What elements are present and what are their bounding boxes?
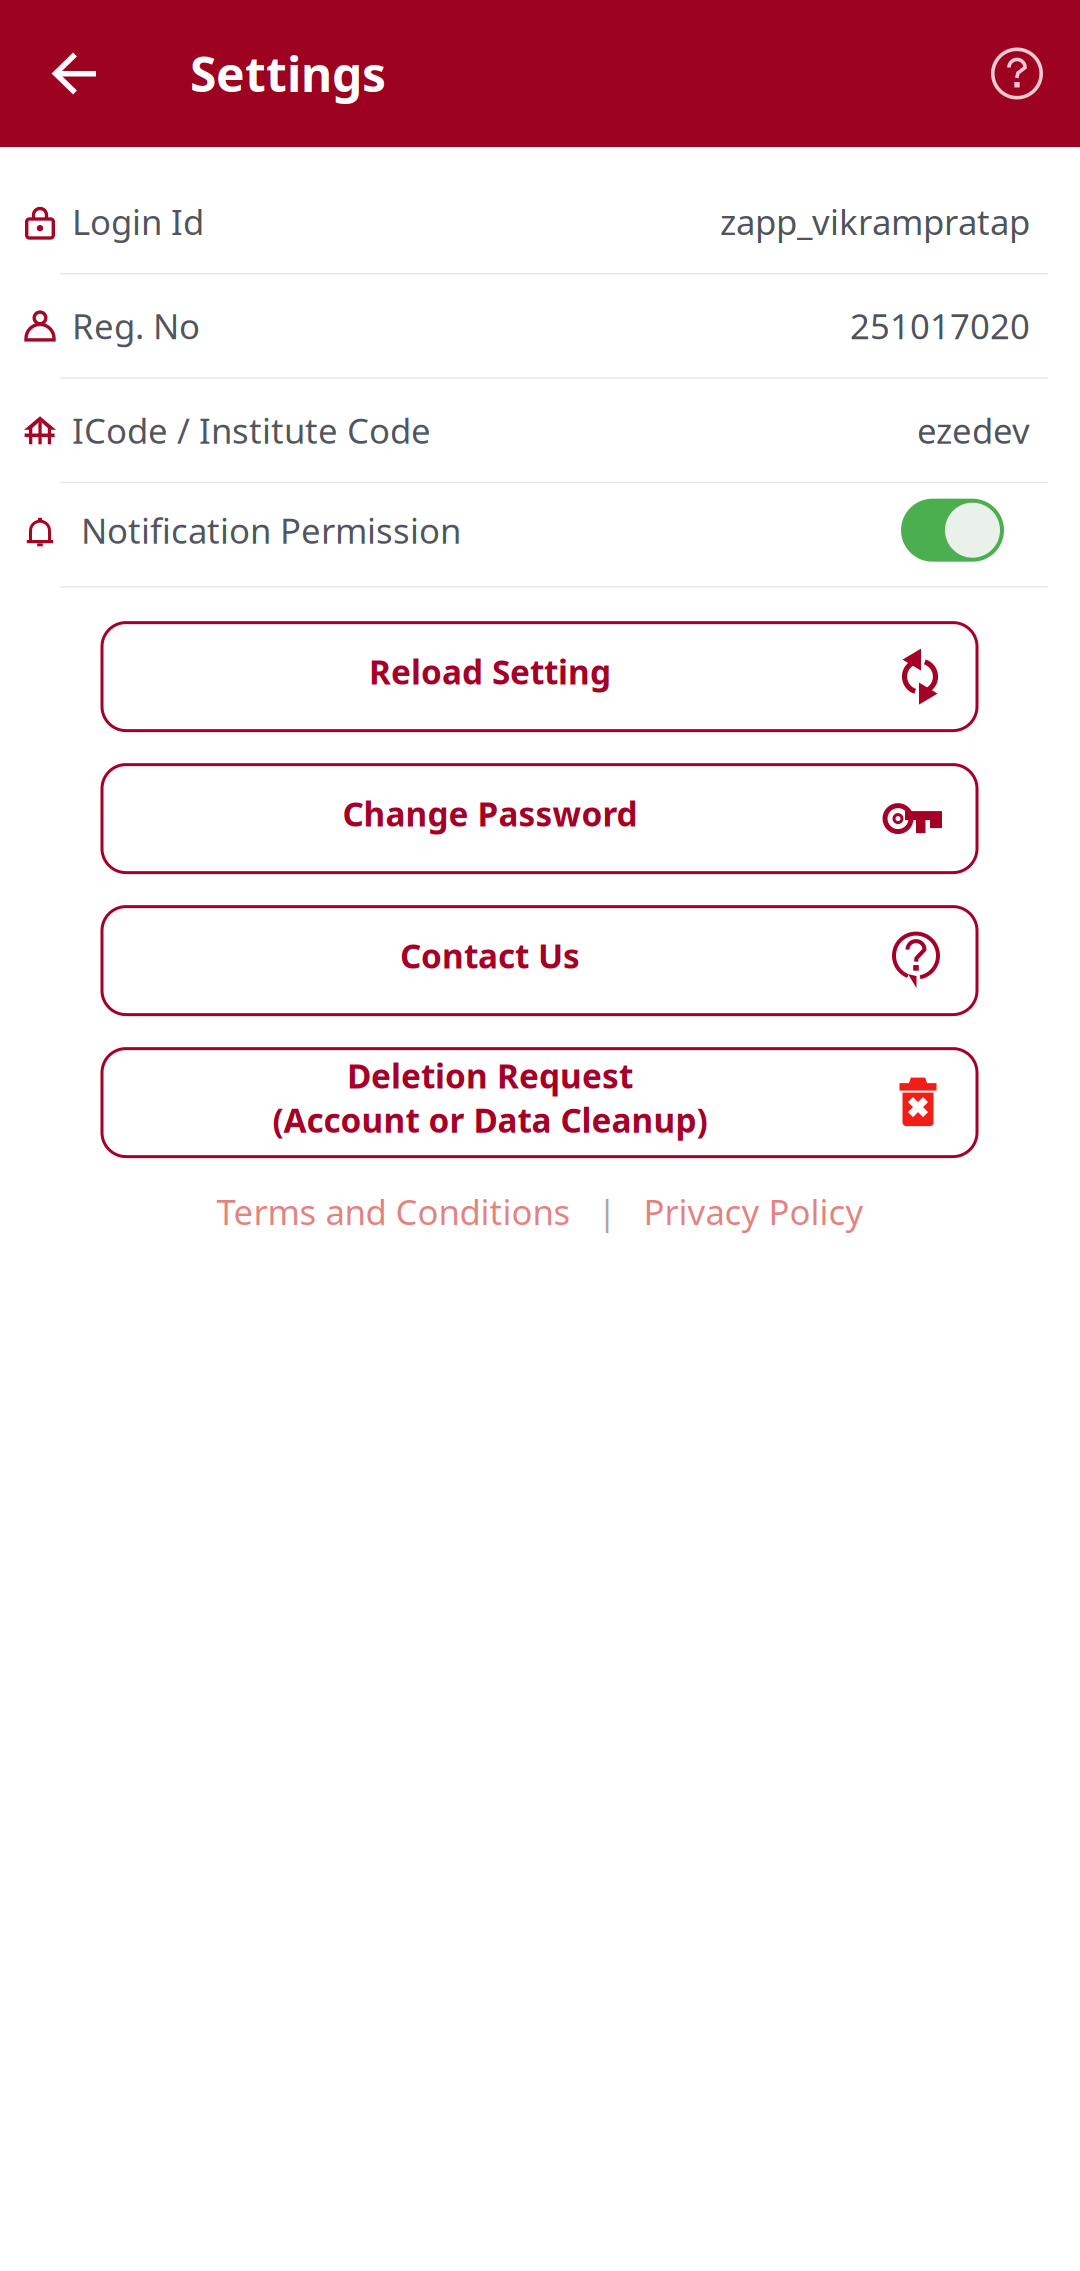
button[interactable]: Deletion Request (102, 1049, 977, 1157)
button[interactable]: Help (991, 0, 1080, 147)
staticText: Notification Permission (81, 507, 461, 553)
button[interactable]: Contact Us (102, 907, 977, 1015)
staticText: Reload Setting (369, 649, 611, 694)
staticText: zapp_vikrampratap (720, 198, 1030, 244)
staticText: Settings (190, 42, 386, 105)
staticText: ezedev (917, 407, 1030, 453)
staticText: | (570, 1189, 643, 1235)
staticText: Terms and Conditions (216, 1189, 570, 1235)
staticText: Privacy Policy (643, 1189, 863, 1235)
staticText: Contact Us (400, 933, 580, 978)
staticText: (Account or Data Cleanup) (272, 1098, 707, 1142)
button[interactable]: Reload Setting (102, 623, 977, 731)
button[interactable]: Terms and Conditions (216, 1189, 570, 1235)
button[interactable]: Change Password (102, 765, 977, 873)
staticText: Login Id (72, 198, 204, 244)
button[interactable]: Notification Permission (901, 499, 1004, 562)
staticText: 251017020 (850, 303, 1030, 349)
staticText: Deletion Request (347, 1053, 633, 1098)
staticText: Change Password (342, 791, 637, 836)
button[interactable]: Privacy Policy (643, 1189, 863, 1235)
button[interactable]: Back (0, 0, 190, 147)
staticText: ICode / Institute Code (72, 407, 431, 453)
staticText: Reg. No (72, 303, 200, 349)
